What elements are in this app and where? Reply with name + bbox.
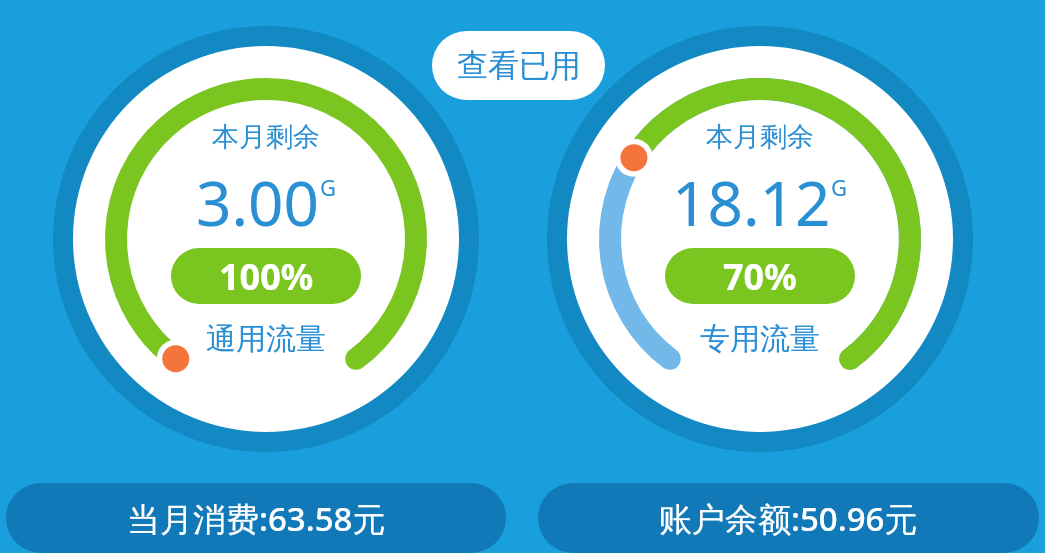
button[interactable]: 查看已用 <box>432 31 605 100</box>
staticText: 70% <box>723 252 797 301</box>
staticText: G <box>320 172 337 202</box>
button[interactable]: 账户余额:50.96元 <box>538 483 1039 553</box>
staticText: 本月剩余 <box>706 120 814 154</box>
staticText: 100% <box>219 252 314 301</box>
staticText: 专用流量 <box>700 320 820 358</box>
button[interactable]: 70% <box>665 248 855 304</box>
staticText: 本月剩余 <box>212 120 320 154</box>
staticText: 通用流量 <box>206 320 326 358</box>
staticText: 18.12 <box>672 160 831 244</box>
staticText: 3.00 <box>196 160 320 244</box>
staticText: 账户余额:50.96元 <box>659 496 918 541</box>
staticText: 查看已用 <box>457 46 581 85</box>
button[interactable]: 100% <box>171 248 361 304</box>
staticText: 当月消费:63.58元 <box>127 496 386 541</box>
button[interactable]: 当月消费:63.58元 <box>6 483 506 553</box>
staticText: G <box>831 172 848 202</box>
